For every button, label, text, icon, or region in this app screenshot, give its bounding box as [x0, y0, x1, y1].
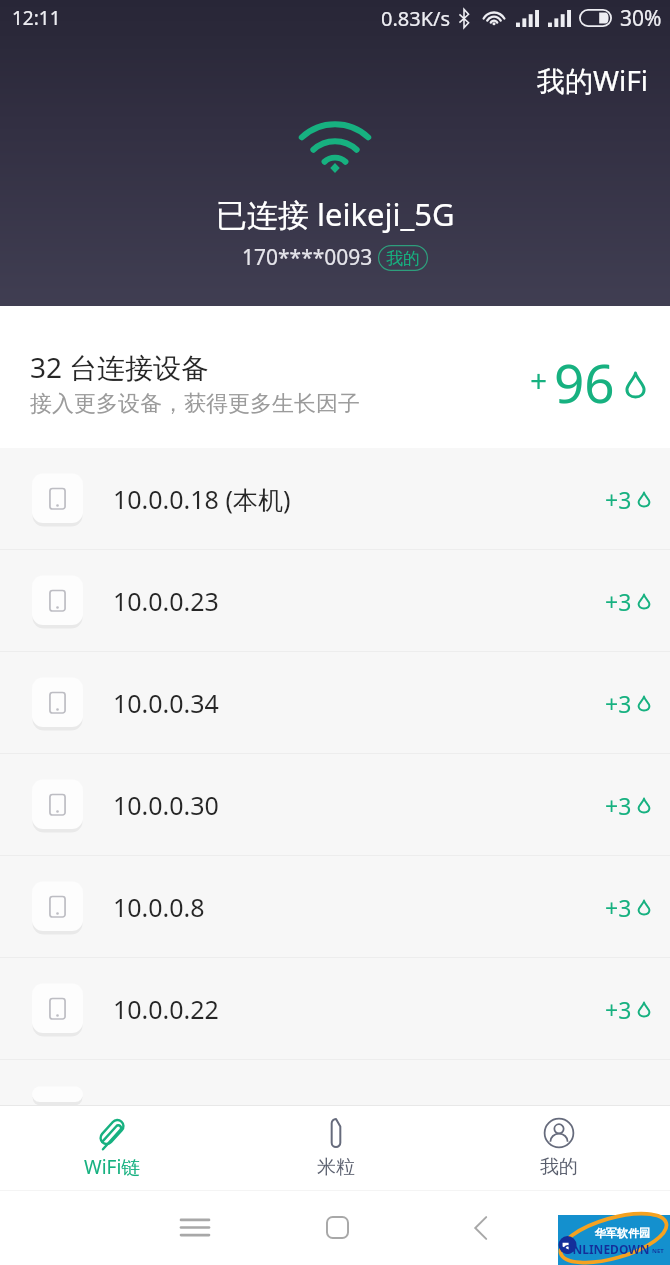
staticText: 0.83K/s	[381, 5, 451, 32]
staticText: 32 台连接设备	[30, 348, 210, 386]
staticText: 96	[554, 346, 615, 418]
staticText: 我的	[540, 1155, 578, 1179]
staticText: 10.0.0.30	[113, 788, 219, 822]
staticText: 10.0.0.22	[113, 992, 219, 1026]
staticText: +3	[605, 586, 632, 617]
staticText: 华军软件园	[595, 1226, 650, 1240]
button[interactable]: 32 台连接设备	[0, 306, 670, 448]
button[interactable]: Menu	[123, 1190, 266, 1265]
button[interactable]: 10.0.0.30	[0, 754, 670, 856]
staticText: 已连接 leikeji_5G	[216, 193, 455, 235]
staticText: 10.0.0.18 (本机)	[113, 482, 291, 516]
staticText: +3	[605, 790, 632, 821]
button[interactable]: 10.0.0.23	[0, 550, 670, 652]
staticText: 我的	[386, 248, 420, 269]
staticText: 接入更多设备，获得更多生长因子	[30, 390, 360, 418]
button[interactable]: Home	[266, 1190, 409, 1265]
staticText: 我的WiFi	[537, 61, 649, 99]
staticText: NET	[652, 1247, 664, 1255]
button[interactable]: WiFi链	[0, 1106, 224, 1190]
staticText: ONLINEDOWN	[563, 1241, 650, 1257]
staticText: 12:11	[12, 5, 61, 31]
staticText: WiFi链	[84, 1154, 141, 1180]
button[interactable]: 10.0.0.34	[0, 652, 670, 754]
button[interactable]: Back	[409, 1190, 552, 1265]
staticText: +3	[605, 994, 632, 1025]
staticText: 10.0.0.34	[113, 686, 219, 720]
staticText: +3	[605, 892, 632, 923]
staticText: +3	[605, 484, 632, 515]
staticText: +	[530, 360, 548, 401]
button[interactable]: 10.0.0.18 (本机)	[0, 448, 670, 550]
button[interactable]: 10.0.0.8	[0, 856, 670, 958]
staticText: 170****0093	[242, 243, 373, 272]
button[interactable]: 10.0.0.22	[0, 958, 670, 1060]
button[interactable]: 我的	[447, 1106, 670, 1190]
staticText: 30%	[620, 4, 662, 33]
staticText: 10.0.0.23	[113, 584, 219, 618]
staticText: +3	[605, 688, 632, 719]
staticText: 10.0.0.8	[113, 890, 205, 924]
button[interactable]: 米粒	[224, 1106, 447, 1190]
staticText: 米粒	[317, 1155, 355, 1179]
